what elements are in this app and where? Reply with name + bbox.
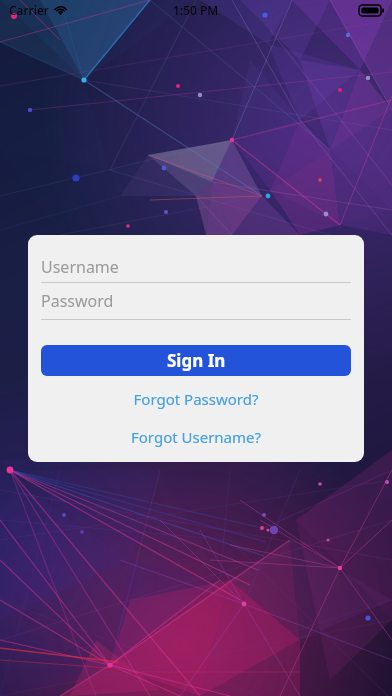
button[interactable]: Forgot Password? xyxy=(41,386,351,412)
button[interactable]: Sign In xyxy=(41,345,351,376)
button[interactable]: Forgot Username? xyxy=(41,424,351,450)
staticText: Username xyxy=(41,256,119,278)
staticText: Password xyxy=(41,290,114,312)
staticText: Sign In xyxy=(167,349,226,372)
staticText: Carrier xyxy=(9,2,49,18)
button[interactable]: Password xyxy=(41,283,351,319)
staticText: Forgot Password? xyxy=(41,389,351,409)
button[interactable]: Username xyxy=(41,252,351,282)
staticText: Forgot Username? xyxy=(41,427,351,447)
staticText: 1:50 PM xyxy=(173,2,219,18)
